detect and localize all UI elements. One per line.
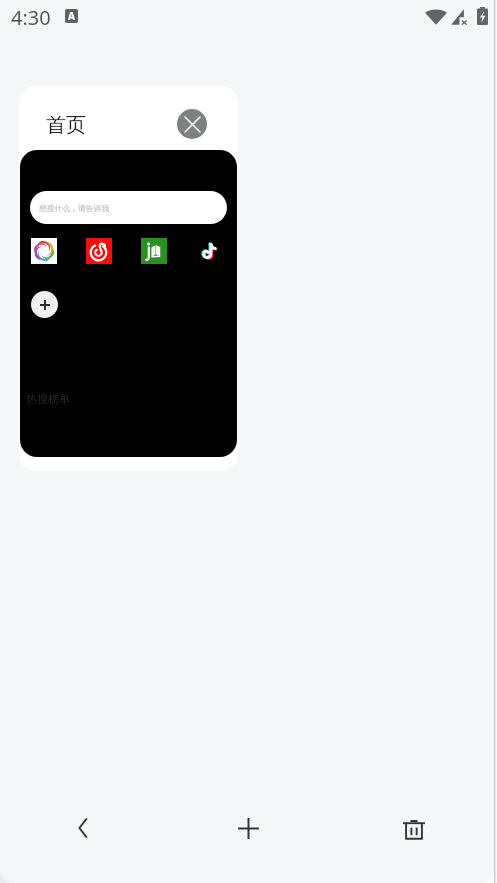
staticText: 4:30 (11, 4, 51, 31)
button[interactable]: Douyin (196, 238, 222, 264)
button[interactable]: Add shortcut (31, 291, 58, 318)
button[interactable]: 想搜什么，请告诉我 (30, 191, 227, 224)
button[interactable]: Clear all (331, 773, 497, 883)
staticText: 想搜什么，请告诉我 (39, 203, 110, 213)
button[interactable]: 首页 (19, 86, 238, 471)
staticText: 热搜榜单 (26, 392, 70, 406)
button[interactable]: Back (0, 773, 165, 883)
button[interactable]: NetEase Cloud Music (86, 238, 112, 264)
staticText: 首页 (46, 113, 86, 138)
button[interactable]: Photos (31, 238, 57, 264)
staticText: A (68, 9, 75, 23)
button[interactable]: Dictionary (141, 238, 167, 264)
button[interactable]: Close (177, 109, 207, 139)
button[interactable]: Home (165, 773, 331, 883)
